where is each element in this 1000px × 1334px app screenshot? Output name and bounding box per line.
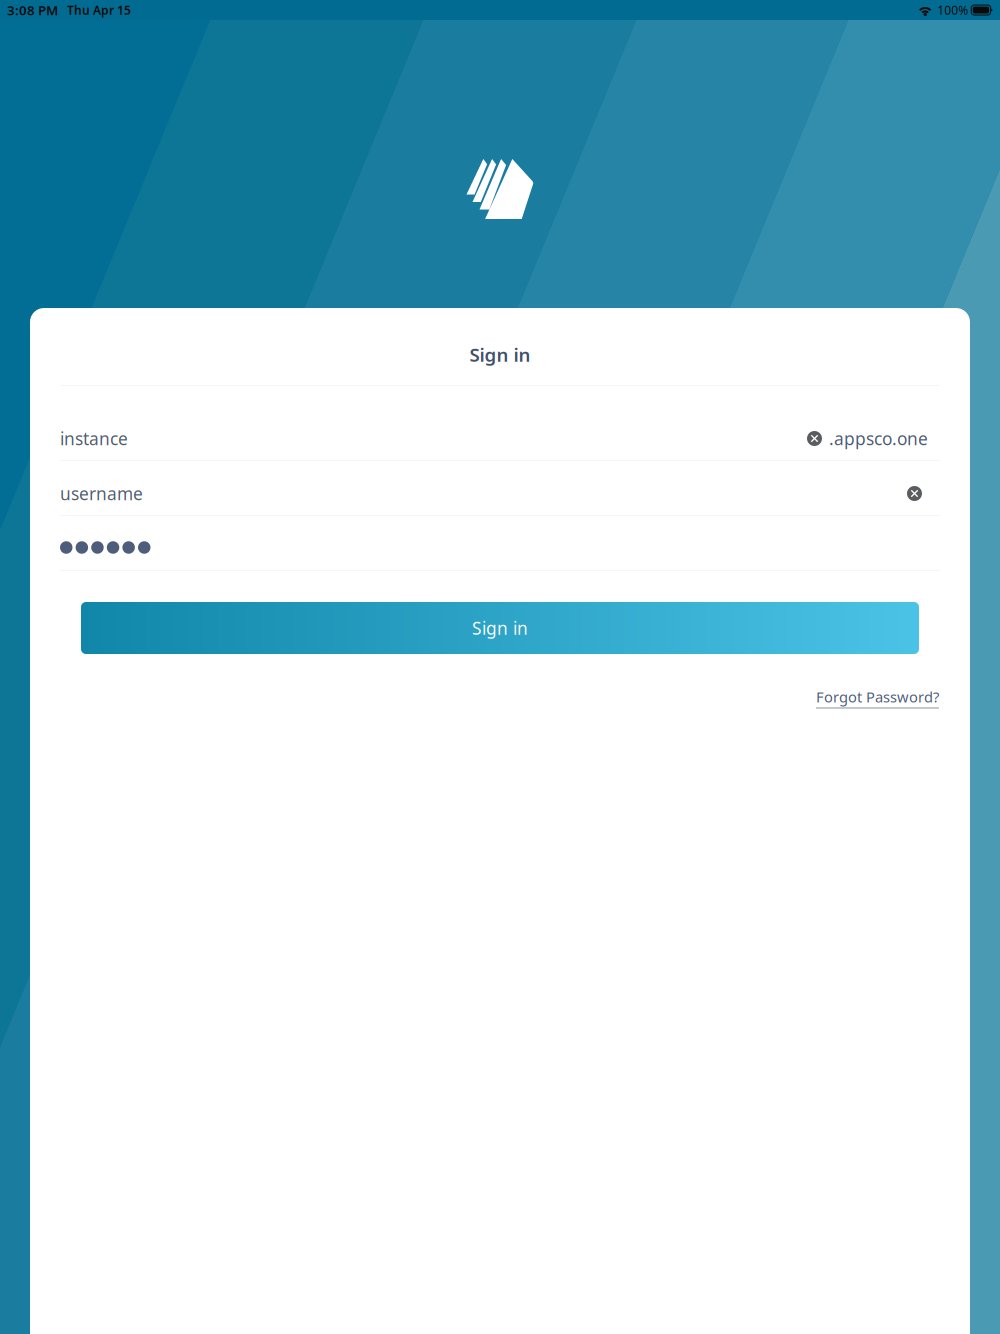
button[interactable]: Forgot Password?	[816, 687, 939, 708]
staticText: 3:08 PM	[7, 1, 58, 19]
staticText: Thu Apr 15	[67, 2, 131, 18]
staticText: Forgot Password?	[816, 687, 939, 706]
button[interactable]: Clear username	[907, 486, 922, 501]
staticText: Sign in	[469, 342, 530, 367]
staticText: instance	[60, 427, 128, 450]
button[interactable]: instance	[60, 427, 128, 450]
staticText: .appsco.one	[829, 427, 928, 450]
staticText: username	[60, 482, 143, 505]
button[interactable]: username	[60, 482, 143, 505]
button[interactable]: Sign in	[81, 602, 919, 654]
staticText: Sign in	[472, 616, 528, 639]
staticText: 100%	[937, 2, 968, 18]
button[interactable]: Clear instance	[807, 431, 822, 446]
